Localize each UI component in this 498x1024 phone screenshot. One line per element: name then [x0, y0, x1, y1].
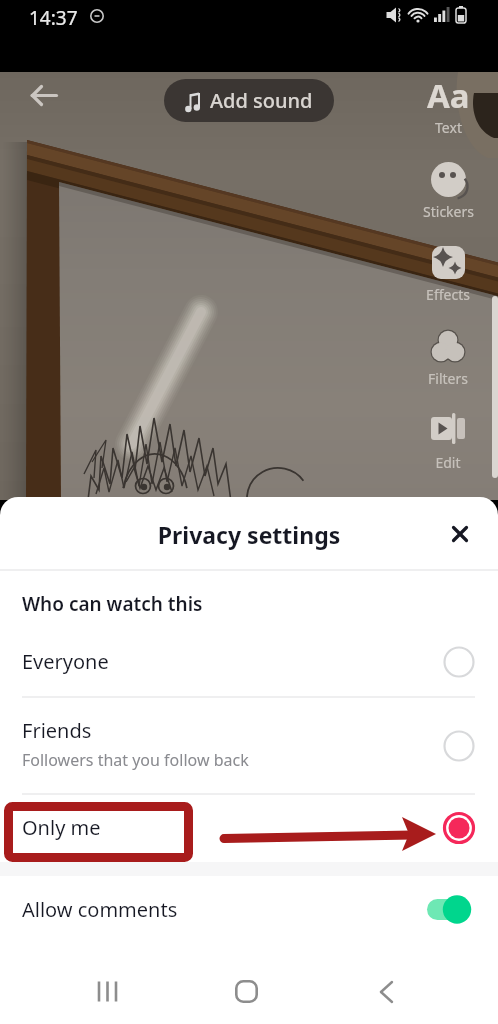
button[interactable]	[0, 877, 498, 942]
button[interactable]: Filters	[414, 323, 482, 388]
button[interactable]: Recents	[0, 959, 166, 1024]
staticText: Edit	[435, 453, 461, 472]
staticText: Stickers	[423, 202, 474, 221]
button[interactable]: Effects	[414, 239, 482, 304]
staticText: Filters	[428, 369, 468, 388]
button[interactable]	[0, 794, 498, 861]
button[interactable]: Home	[166, 959, 332, 1024]
staticText: Allow comments	[22, 896, 178, 923]
button[interactable]: Close	[441, 515, 478, 552]
staticText: Followers that you follow back	[22, 749, 249, 771]
button[interactable]	[0, 628, 498, 696]
button[interactable]: Aa	[414, 72, 482, 137]
staticText: Everyone	[22, 648, 109, 675]
staticText: Privacy settings	[0, 519, 498, 550]
staticText: Only me	[22, 814, 101, 841]
staticText: Aa	[427, 73, 470, 118]
button[interactable]	[0, 697, 498, 793]
button[interactable]: Edit	[414, 407, 482, 472]
button[interactable]: Add sound	[164, 79, 334, 122]
staticText: 14:37	[29, 5, 78, 31]
staticText: Friends	[22, 717, 92, 744]
staticText: Add sound	[210, 87, 313, 114]
button[interactable]: Back	[332, 959, 498, 1024]
staticText: Text	[435, 118, 462, 137]
staticText: Who can watch this	[22, 591, 203, 617]
button[interactable]: Stickers	[414, 156, 482, 221]
button[interactable]: Back	[22, 74, 64, 116]
staticText: Effects	[426, 285, 470, 304]
